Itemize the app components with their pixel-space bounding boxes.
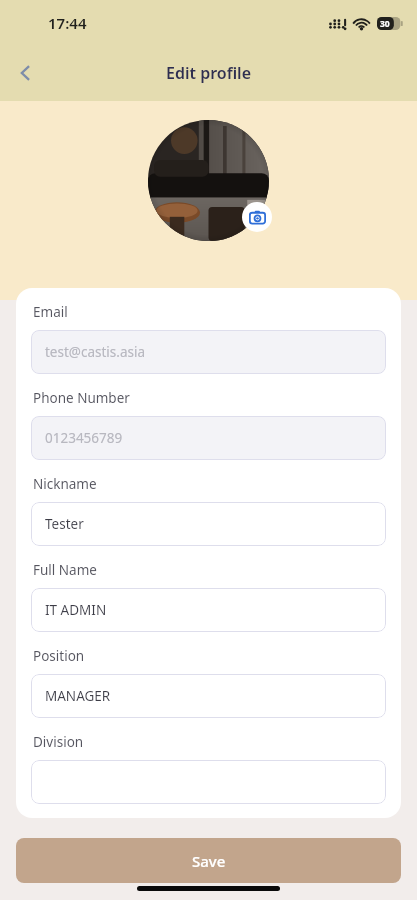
button[interactable]: Save — [16, 838, 401, 883]
staticText: Save — [192, 851, 226, 871]
staticText: MANAGER — [45, 687, 111, 705]
button[interactable]: Change profile photo — [242, 202, 272, 232]
staticText: Edit profile — [166, 62, 251, 84]
staticText: Phone Number — [33, 389, 130, 407]
staticText: 0123456789 — [45, 429, 123, 447]
button[interactable]: IT ADMIN — [31, 588, 386, 632]
button[interactable]: Back — [6, 53, 46, 93]
staticText: Nickname — [33, 475, 97, 493]
staticText: Division — [33, 733, 84, 751]
button[interactable]: MANAGER — [31, 674, 386, 718]
staticText: 17:44 — [48, 13, 87, 33]
staticText: Position — [33, 647, 85, 665]
staticText: 30 — [380, 18, 390, 30]
button[interactable]: 0123456789 — [31, 416, 386, 460]
button[interactable]: Tester — [31, 502, 386, 546]
button[interactable]: test@castis.asia — [31, 330, 386, 374]
button[interactable] — [31, 760, 386, 804]
staticText: Full Name — [33, 561, 97, 579]
staticText: test@castis.asia — [45, 343, 146, 361]
staticText: Email — [33, 303, 68, 321]
staticText: Tester — [45, 515, 84, 533]
staticText: IT ADMIN — [45, 601, 107, 619]
